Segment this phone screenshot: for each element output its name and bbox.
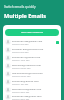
staticText: Synced 2 days ago	[12, 91, 30, 94]
staticText: Synced 2 hours ago	[12, 67, 31, 70]
button[interactable]: johnathan.doe@gmail.com	[3, 38, 61, 46]
button[interactable]: johnathan.d@yahoo.com	[3, 54, 61, 62]
staticText: jdoe.work@company.com	[12, 63, 41, 66]
staticText: Synced 1 hour ago	[12, 59, 30, 62]
staticText: Synced 3 days ago	[12, 98, 30, 100]
staticText: Multiple Emails	[4, 12, 47, 19]
button[interactable]: jdoe.work@company.com	[3, 62, 61, 70]
button[interactable]: jdoe.personal@gmail.com	[3, 86, 61, 94]
staticText: ADD NEW ACCOUNT	[21, 31, 44, 34]
button[interactable]: jonathan.doe@outlook.com	[3, 46, 61, 54]
staticText: doe.johnathan@icloud.com	[12, 71, 43, 74]
staticText: Synced 1 day ago	[12, 83, 29, 86]
staticText: johnathan.doe@gmail.com	[12, 39, 43, 42]
button[interactable]: doe.johnathan@icloud.com	[3, 70, 61, 78]
other: Active account	[56, 41, 59, 44]
button[interactable]: ADD NEW ACCOUNT	[5, 29, 59, 36]
button[interactable]: johnathan.doe@zoho.com	[3, 94, 61, 100]
staticText: Switch emails quickly	[4, 5, 36, 9]
staticText: johnathan.d@yahoo.com	[12, 55, 41, 58]
staticText: Synced 2 min ago	[12, 43, 29, 46]
staticText: johnathan.doe@zoho.com	[12, 94, 42, 97]
staticText: johnathan@proton.com	[12, 79, 39, 82]
staticText: Synced 9 min ago	[12, 51, 29, 54]
staticText: Synced 5 hours ago	[12, 75, 31, 78]
staticText: jdoe.personal@gmail.com	[12, 87, 42, 90]
button[interactable]: johnathan@proton.com	[3, 78, 61, 86]
staticText: jonathan.doe@outlook.com	[12, 47, 44, 50]
